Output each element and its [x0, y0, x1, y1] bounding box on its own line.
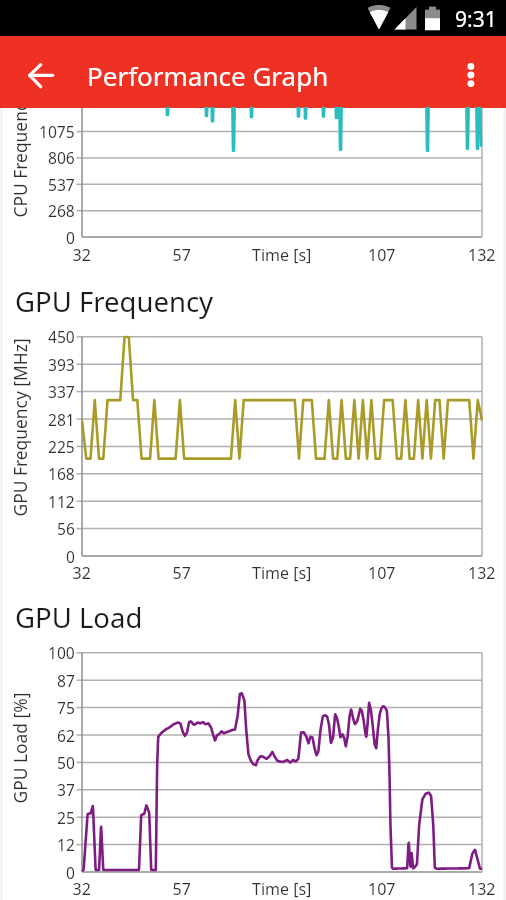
button[interactable]: Back — [18, 48, 66, 96]
button[interactable]: More options — [447, 48, 495, 96]
